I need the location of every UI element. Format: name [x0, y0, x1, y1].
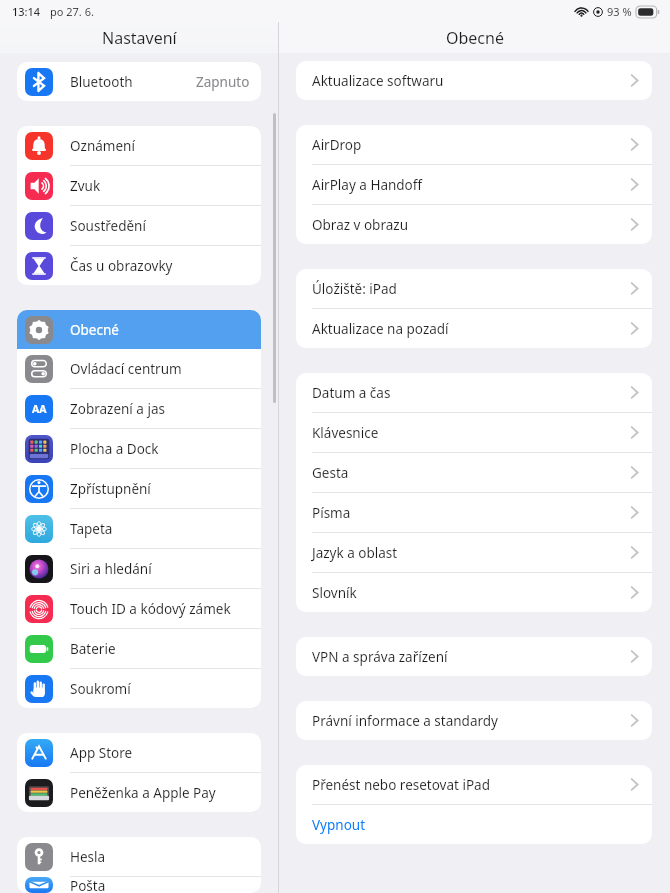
button[interactable]: AA [17, 389, 261, 428]
staticText: po 27. 6. [50, 4, 94, 19]
button[interactable]: Tapeta [17, 509, 261, 548]
button[interactable]: Právní informace a standardy [296, 701, 652, 740]
staticText: 93 % [607, 4, 632, 19]
button[interactable]: Baterie [17, 629, 261, 668]
staticText: Hesla [70, 848, 106, 866]
staticText: AirDrop [312, 136, 631, 154]
button[interactable]: Bluetooth [17, 62, 261, 101]
staticText: Zapnuto [196, 73, 250, 91]
button[interactable]: AirPlay a Handoff [296, 165, 652, 204]
staticText: Obraz v obrazu [312, 216, 631, 234]
staticText: Zobrazení a jas [70, 400, 165, 418]
button[interactable]: Touch ID a kódový zámek [17, 589, 261, 628]
staticText: Pošta [70, 877, 106, 893]
staticText: Písma [312, 504, 631, 522]
button[interactable]: Jazyk a oblast [296, 533, 652, 572]
staticText: AA [32, 402, 47, 416]
button[interactable]: Soustředění [17, 206, 261, 245]
staticText: Zvuk [70, 177, 101, 195]
button[interactable]: VPN a správa zařízení [296, 637, 652, 676]
button[interactable]: Přenést nebo resetovat iPad [296, 765, 652, 804]
button[interactable]: Klávesnice [296, 413, 652, 452]
button[interactable]: Čas u obrazovky [17, 246, 261, 285]
staticText: Baterie [70, 640, 116, 658]
staticText: Jazyk a oblast [312, 544, 631, 562]
staticText: Soukromí [70, 680, 131, 698]
staticText: Právní informace a standardy [312, 712, 631, 730]
staticText: Zpřístupnění [70, 480, 151, 498]
button[interactable]: Gesta [296, 453, 652, 492]
button[interactable]: Aktualizace na pozadí [296, 309, 652, 348]
button[interactable]: Hesla [17, 837, 261, 876]
staticText: Obecné [70, 321, 119, 339]
staticText: Přenést nebo resetovat iPad [312, 776, 631, 794]
staticText: Vypnout [312, 816, 638, 834]
button[interactable]: Plocha a Dock [17, 429, 261, 468]
staticText: Slovník [312, 584, 631, 602]
button[interactable]: Písma [296, 493, 652, 532]
staticText: Tapeta [70, 520, 113, 538]
staticText: Nastavení [102, 27, 177, 49]
button[interactable]: Slovník [296, 573, 652, 612]
staticText: 13:14 [12, 4, 41, 19]
button[interactable]: Soukromí [17, 669, 261, 708]
staticText: Peněženka a Apple Pay [70, 784, 216, 802]
staticText: Plocha a Dock [70, 440, 159, 458]
button[interactable]: Datum a čas [296, 373, 652, 412]
staticText: Ovládací centrum [70, 360, 182, 378]
staticText: Klávesnice [312, 424, 631, 442]
staticText: Gesta [312, 464, 631, 482]
staticText: Datum a čas [312, 384, 631, 402]
button[interactable]: Zpřístupnění [17, 469, 261, 508]
staticText: Aktualizace na pozadí [312, 320, 631, 338]
button[interactable]: Peněženka a Apple Pay [17, 773, 261, 812]
staticText: Siri a hledání [70, 560, 152, 578]
button[interactable]: Siri a hledání [17, 549, 261, 588]
button[interactable]: Obraz v obrazu [296, 205, 652, 244]
staticText: Aktualizace softwaru [312, 72, 631, 90]
staticText: Čas u obrazovky [70, 257, 173, 275]
button[interactable]: Oznámení [17, 126, 261, 165]
button[interactable]: Aktualizace softwaru [296, 61, 652, 100]
button[interactable]: Úložiště: iPad [296, 269, 652, 308]
staticText: Touch ID a kódový zámek [70, 600, 231, 618]
button[interactable]: Zvuk [17, 166, 261, 205]
staticText: App Store [70, 744, 133, 762]
button[interactable]: AirDrop [296, 125, 652, 164]
staticText: Úložiště: iPad [312, 280, 631, 298]
staticText: Obecné [446, 27, 504, 49]
button[interactable]: Vypnout [296, 805, 652, 844]
staticText: AirPlay a Handoff [312, 176, 631, 194]
button[interactable]: Pošta [17, 877, 261, 893]
button[interactable]: Obecné [17, 310, 261, 349]
staticText: VPN a správa zařízení [312, 648, 631, 666]
button[interactable]: Ovládací centrum [17, 349, 261, 388]
staticText: Oznámení [70, 137, 135, 155]
button[interactable]: App Store [17, 733, 261, 772]
staticText: Soustředění [70, 217, 146, 235]
staticText: Bluetooth [70, 73, 133, 91]
